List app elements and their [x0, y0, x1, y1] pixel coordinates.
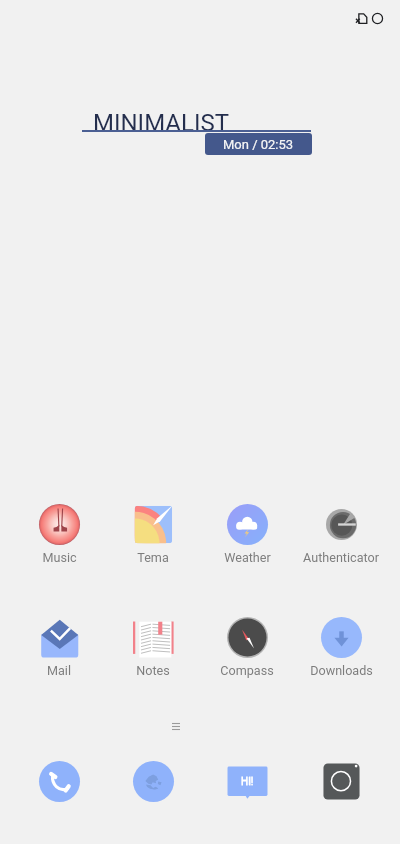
button[interactable]: Messages	[200, 760, 294, 802]
button[interactable]: Browser	[106, 760, 200, 802]
button[interactable]: Phone	[12, 760, 106, 802]
button[interactable]: Music	[12, 504, 106, 565]
staticText: HI!	[241, 776, 254, 788]
staticText: Tema	[137, 550, 169, 565]
staticText: Weather	[224, 550, 271, 565]
staticText: Mon / 02:53	[223, 137, 294, 152]
button[interactable]: Weather	[200, 504, 294, 565]
staticText: Mail	[47, 663, 71, 678]
button[interactable]: Compass	[200, 617, 294, 678]
button[interactable]: Notes	[106, 617, 200, 678]
button[interactable]: Tema	[106, 504, 200, 565]
staticText: Notes	[136, 663, 170, 678]
button[interactable]: Authenticator	[294, 504, 388, 565]
staticText: Authenticator	[303, 550, 379, 565]
button[interactable]: Camera	[294, 760, 388, 802]
button[interactable]: App drawer	[172, 723, 180, 730]
staticText: Music	[42, 550, 77, 565]
button[interactable]: Downloads	[294, 617, 388, 678]
button[interactable]: Mon / 02:53	[205, 133, 312, 155]
staticText: Compass	[220, 663, 274, 678]
button[interactable]: Mail	[12, 617, 106, 678]
staticText: MINIMALIST	[93, 109, 229, 137]
staticText: Downloads	[310, 663, 373, 678]
